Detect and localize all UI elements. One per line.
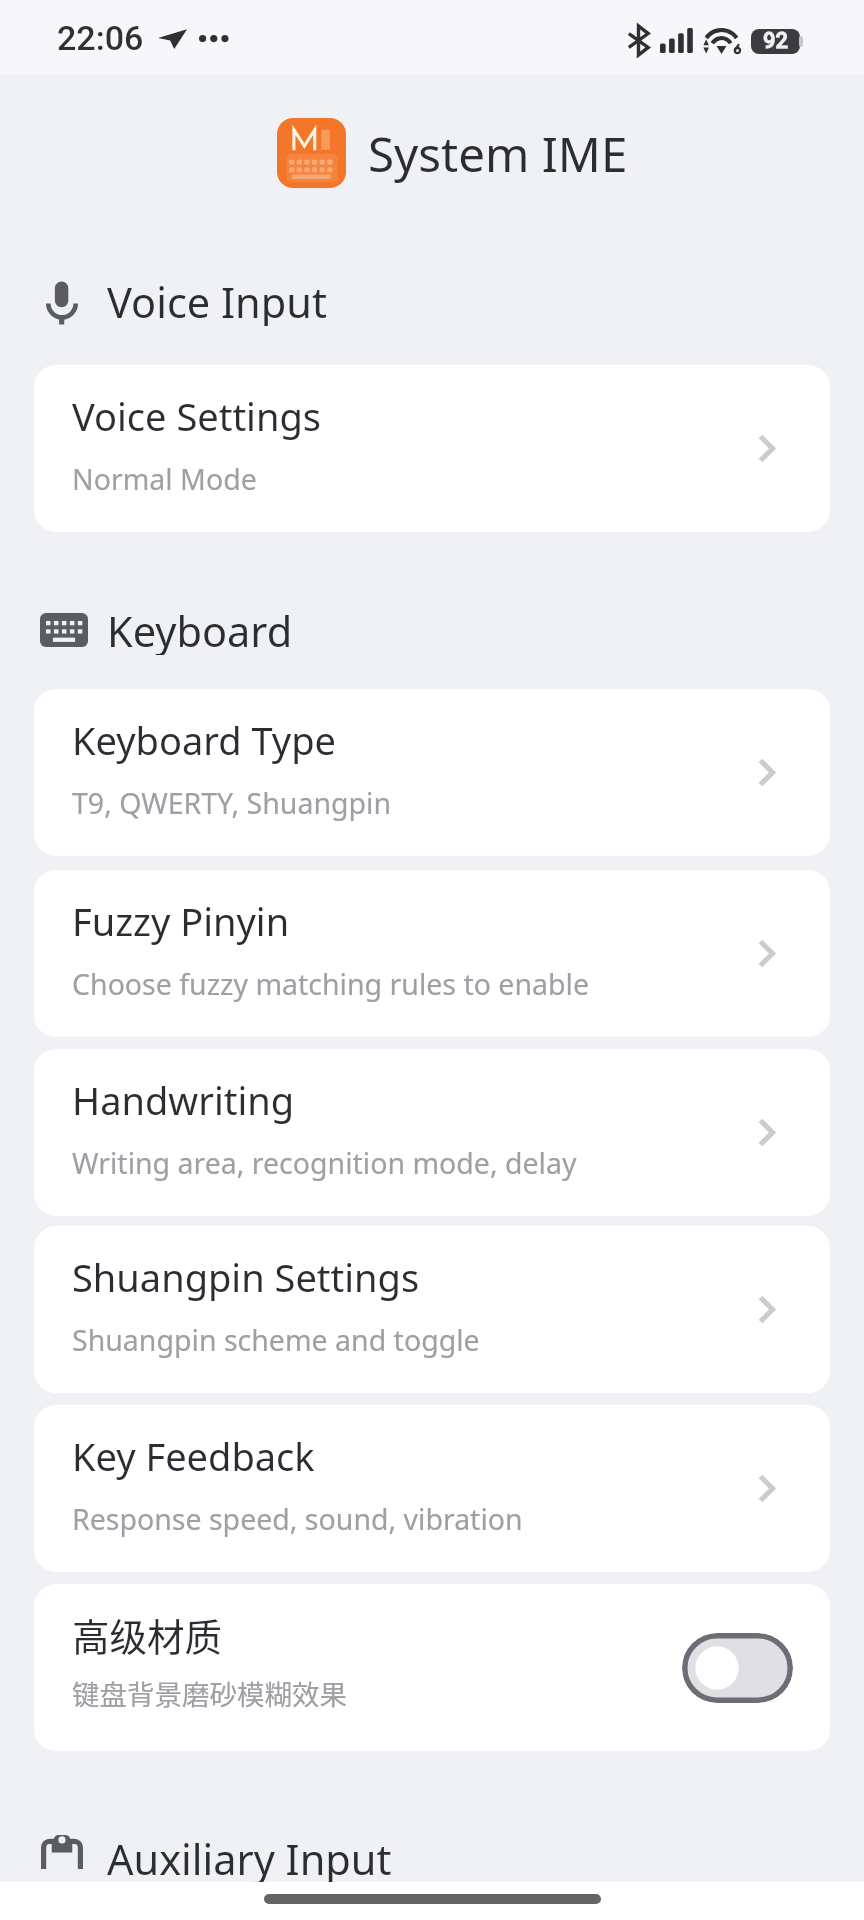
staticText: Auxiliary Input bbox=[107, 1831, 392, 1882]
staticText: Handwriting bbox=[72, 1074, 295, 1126]
staticText: 92 bbox=[763, 28, 789, 54]
staticText: Fuzzy Pinyin bbox=[72, 895, 290, 947]
staticText: System IME bbox=[368, 121, 628, 186]
staticText: Shuangpin Settings bbox=[72, 1251, 420, 1303]
staticText: Key Feedback bbox=[72, 1430, 315, 1482]
button[interactable]: Fuzzy Pinyin bbox=[34, 870, 830, 1037]
button[interactable]: Shuangpin Settings bbox=[34, 1226, 830, 1393]
staticText: Keyboard bbox=[107, 603, 293, 655]
staticText: Voice Settings bbox=[72, 390, 321, 442]
staticText: Response speed, sound, vibration bbox=[72, 1500, 523, 1539]
staticText: Keyboard Type bbox=[72, 714, 336, 766]
button[interactable]: Handwriting bbox=[34, 1049, 830, 1216]
button[interactable]: Keyboard Type bbox=[34, 689, 830, 856]
button[interactable]: Key Feedback bbox=[34, 1405, 830, 1572]
staticText: 高级材质 bbox=[72, 1607, 222, 1661]
staticText: Choose fuzzy matching rules to enable bbox=[72, 965, 589, 1004]
staticText: Shuangpin scheme and toggle bbox=[72, 1321, 480, 1360]
staticText: Normal Mode bbox=[72, 460, 257, 499]
staticText: 键盘背景磨砂模糊效果 bbox=[72, 1673, 347, 1713]
button[interactable]: Advanced material toggle bbox=[682, 1633, 793, 1703]
button[interactable]: Voice Settings bbox=[34, 365, 830, 532]
staticText: T9, QWERTY, Shuangpin bbox=[72, 784, 392, 823]
staticText: 22:06 bbox=[57, 18, 144, 58]
staticText: Writing area, recognition mode, delay bbox=[72, 1144, 577, 1183]
staticText: Voice Input bbox=[107, 274, 327, 326]
